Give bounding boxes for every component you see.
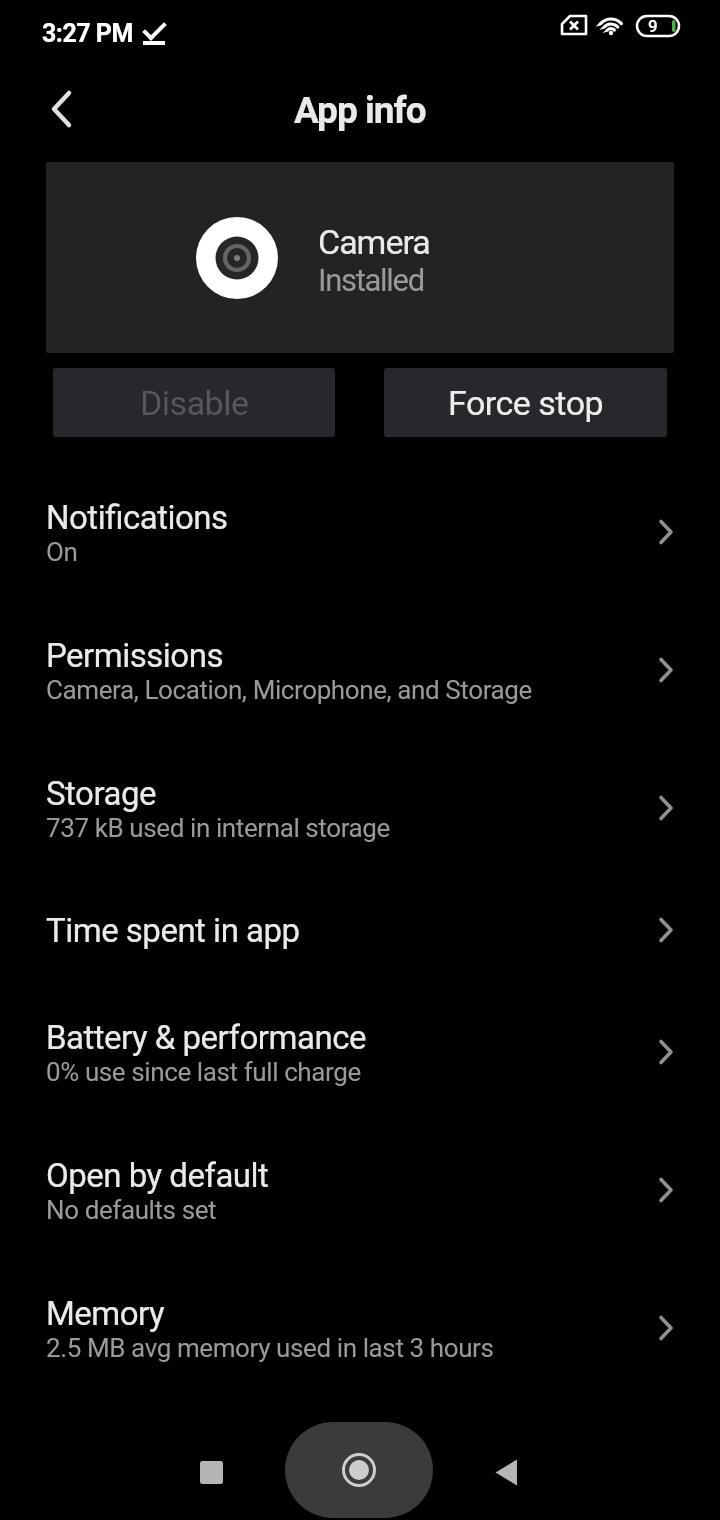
staticText: No defaults set	[46, 1195, 217, 1225]
staticText: 737 kB used in internal storage	[46, 813, 390, 843]
staticText: 2.5 MB avg memory used in last 3 hours	[46, 1333, 494, 1363]
staticText: Permissions	[46, 636, 223, 675]
button[interactable]	[478, 1444, 534, 1500]
button[interactable]	[285, 1422, 433, 1518]
button[interactable]: Permissions	[0, 601, 720, 739]
staticText: On	[46, 537, 78, 567]
staticText: 9	[648, 16, 658, 36]
button[interactable]: Memory	[0, 1259, 720, 1397]
staticText: Camera	[318, 222, 430, 262]
staticText: Open by default	[46, 1156, 269, 1195]
staticText: Force stop	[448, 383, 604, 423]
staticText: Memory	[46, 1294, 165, 1333]
button[interactable]	[183, 1444, 239, 1500]
staticText: Storage	[46, 774, 156, 813]
staticText: 3:27 PM	[42, 19, 133, 48]
staticText: Time spent in app	[46, 911, 300, 950]
button[interactable]: Time spent in app	[0, 877, 720, 983]
button[interactable]: Storage	[0, 739, 720, 877]
staticText: Installed	[318, 262, 424, 298]
staticText: Battery & performance	[46, 1018, 366, 1057]
button[interactable]: Disable	[53, 368, 335, 437]
staticText: App info	[294, 89, 426, 132]
button[interactable]: Battery & performance	[0, 983, 720, 1121]
staticText: Camera, Location, Microphone, and Storag…	[46, 675, 532, 705]
button[interactable]: Force stop	[384, 368, 667, 437]
button[interactable]: Open by default	[0, 1121, 720, 1259]
button[interactable]	[34, 81, 90, 137]
button[interactable]: Camera	[46, 162, 674, 353]
staticText: Disable	[140, 383, 249, 423]
staticText: Notifications	[46, 498, 228, 537]
staticText: 0% use since last full charge	[46, 1057, 361, 1087]
button[interactable]: Notifications	[0, 463, 720, 601]
